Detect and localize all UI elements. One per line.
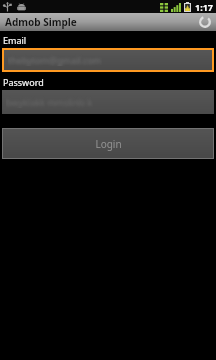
- staticText: thebytom@gmail.com: [8, 54, 102, 66]
- staticText: Email: [3, 34, 27, 46]
- button[interactable]: Login: [3, 129, 213, 158]
- staticText: Password: [3, 76, 44, 88]
- staticText: Login: [95, 137, 122, 151]
- staticText: Admob Simple: [5, 15, 77, 29]
- staticText: 1:17: [195, 1, 213, 13]
- button[interactable]: thebytom@gmail.com: [4, 50, 212, 70]
- button[interactable]: bwyklakk mmslinls k: [2, 90, 214, 114]
- other: Loading: [199, 16, 211, 28]
